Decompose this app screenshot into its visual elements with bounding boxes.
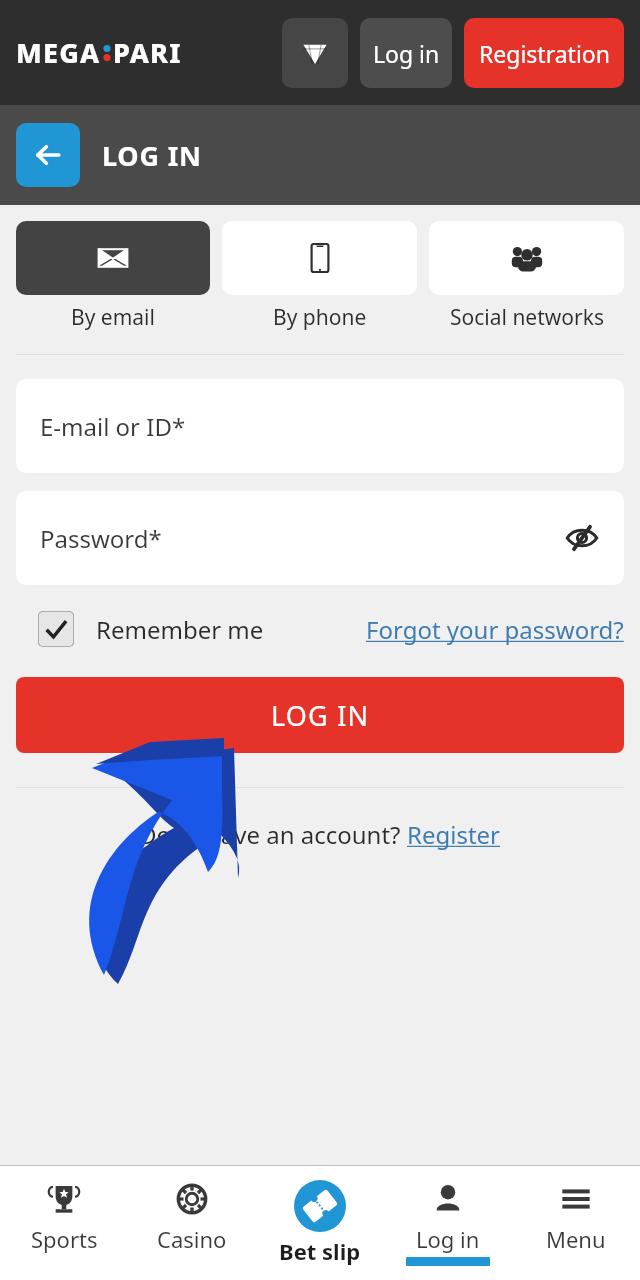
staticText: E-mail or ID* — [40, 410, 186, 443]
button[interactable]: Casino — [128, 1166, 256, 1280]
staticText: Remember me — [96, 613, 264, 646]
staticText: Registration — [479, 38, 610, 69]
button[interactable]: Forgot your password? — [366, 613, 624, 646]
button[interactable]: LOG IN — [16, 677, 624, 753]
staticText: Log in — [416, 1224, 480, 1254]
staticText: Don't have an account? — [139, 818, 407, 851]
button[interactable]: Back — [16, 123, 80, 187]
button[interactable]: By phone — [222, 221, 417, 332]
staticText: LOG IN — [102, 137, 202, 174]
staticText: Casino — [157, 1224, 227, 1254]
button[interactable]: Social networks — [429, 221, 624, 332]
button[interactable]: Bet slip — [256, 1166, 384, 1280]
staticText: Forgot your password? — [366, 613, 624, 646]
button[interactable]: By email — [16, 221, 210, 332]
staticText: Register — [407, 818, 501, 851]
button[interactable]: Register — [407, 818, 501, 851]
staticText: By phone — [273, 303, 367, 332]
staticText: Sports — [31, 1224, 98, 1254]
button[interactable]: Show password — [558, 514, 606, 562]
staticText: PARI — [113, 34, 182, 71]
staticText: LOG IN — [271, 697, 370, 734]
staticText: Menu — [546, 1224, 606, 1254]
button[interactable]: Promotions — [282, 18, 348, 88]
button[interactable]: Log in — [360, 18, 452, 88]
staticText: Bet slip — [279, 1236, 361, 1266]
staticText: Password* — [40, 522, 162, 555]
button[interactable]: Password* — [16, 491, 624, 585]
staticText: MEGA — [16, 34, 101, 71]
staticText: Log in — [373, 38, 440, 69]
staticText: By email — [71, 303, 155, 332]
button[interactable]: Sports — [0, 1166, 128, 1280]
button[interactable]: Menu — [512, 1166, 640, 1280]
button[interactable]: Registration — [464, 18, 624, 88]
button[interactable]: Remember me — [16, 611, 264, 647]
button[interactable]: Log in — [384, 1166, 512, 1280]
staticText: Social networks — [450, 303, 604, 332]
button[interactable]: E-mail or ID* — [16, 379, 624, 473]
